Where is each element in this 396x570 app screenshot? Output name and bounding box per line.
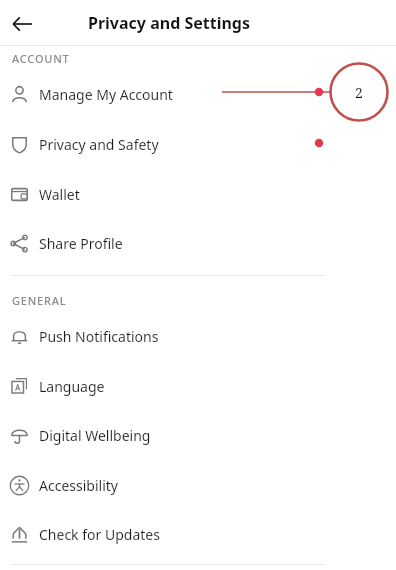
staticText: Digital Wellbeing [39, 426, 151, 445]
staticText: GENERAL [12, 293, 67, 308]
button[interactable]: Accessibility [0, 467, 396, 503]
button[interactable]: Digital Wellbeing [0, 417, 396, 453]
staticText: Privacy and Settings [88, 12, 250, 34]
button[interactable]: Wallet [0, 176, 396, 212]
button[interactable]: Push Notifications [0, 318, 396, 354]
staticText: Check for Updates [39, 525, 160, 544]
button[interactable]: Check for Updates [0, 516, 396, 552]
staticText: ACCOUNT [12, 51, 70, 66]
staticText: Accessibility [39, 476, 118, 495]
button[interactable]: Manage My Account [0, 76, 396, 112]
button[interactable]: Back [4, 6, 40, 42]
staticText: Wallet [39, 185, 80, 204]
staticText: Share Profile [39, 234, 123, 253]
staticText: Privacy and Safety [39, 135, 159, 154]
staticText: Push Notifications [39, 327, 159, 346]
staticText: Language [39, 377, 105, 396]
staticText: 2 [355, 83, 363, 102]
staticText: Manage My Account [39, 85, 173, 104]
button[interactable]: Privacy and Safety [0, 126, 396, 162]
button[interactable]: Share Profile [0, 225, 396, 261]
button[interactable]: Language [0, 368, 396, 404]
